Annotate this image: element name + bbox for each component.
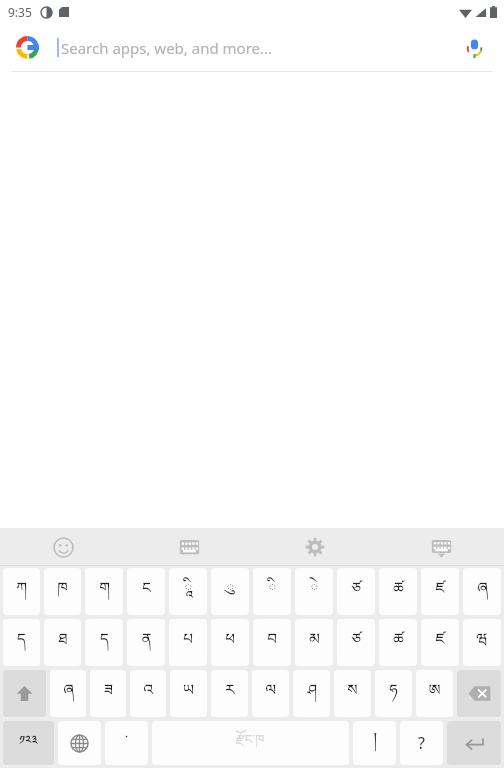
button[interactable]: བ [253, 619, 291, 666]
staticText: ཝ [476, 622, 488, 664]
staticText: ུ [226, 571, 235, 613]
button[interactable]: ཝ [463, 619, 501, 666]
button[interactable]: ཕ [211, 619, 249, 666]
button[interactable]: མ [295, 619, 333, 666]
button[interactable]: ་ [105, 721, 148, 765]
staticText: ཙ [351, 571, 361, 613]
button[interactable]: ང [127, 568, 165, 615]
staticText: ད [17, 622, 26, 664]
button[interactable]: ཧ [375, 670, 412, 717]
staticText: ཛ [435, 622, 445, 664]
staticText: ཞ [477, 571, 488, 613]
button[interactable]: ཱི [169, 568, 207, 615]
button[interactable]: ི [253, 568, 291, 615]
button[interactable]: Search apps, web, and more... [0, 24, 504, 71]
staticText: ཙ [351, 622, 361, 664]
button[interactable]: Backspace [457, 670, 501, 717]
staticText: ཚ [393, 571, 404, 613]
button[interactable]: ཁ [44, 568, 81, 615]
button[interactable]: Emoji [0, 528, 126, 566]
staticText: ཱི [184, 571, 193, 613]
button[interactable]: ཨ [416, 670, 453, 717]
staticText: ེ [310, 571, 319, 613]
button[interactable]: ། [353, 721, 396, 765]
staticText: ཐ [58, 622, 68, 664]
staticText: བ [267, 622, 277, 664]
staticText: ང [142, 571, 151, 613]
button[interactable]: པ [169, 619, 207, 666]
button[interactable]: Keyboard layout [126, 528, 252, 566]
staticText: ལ [265, 673, 276, 715]
staticText: ཁ [57, 571, 68, 613]
button[interactable]: ག [85, 568, 123, 615]
staticText: ། [373, 721, 377, 765]
button[interactable]: ཛ [421, 568, 459, 615]
staticText: ཀ [16, 571, 27, 613]
staticText: ཚ [393, 622, 404, 664]
button[interactable]: ད [85, 619, 123, 666]
button[interactable]: ཤ [293, 670, 330, 717]
button[interactable]: ཚ [379, 619, 417, 666]
staticText: ཕ [225, 622, 235, 664]
staticText: ན [141, 622, 152, 664]
button[interactable]: ད [3, 619, 40, 666]
button[interactable]: ? [400, 721, 443, 765]
staticText: ? [418, 732, 425, 754]
button[interactable]: རྫོང་ཁ [152, 721, 349, 765]
button[interactable]: ེ [295, 568, 333, 615]
staticText: པ [183, 622, 193, 664]
staticText: ག [99, 571, 110, 613]
button[interactable]: ལ [252, 670, 289, 717]
staticText: ༡༢༣ [19, 726, 38, 760]
staticText: ི [268, 571, 277, 613]
button[interactable]: ཙ [337, 568, 375, 615]
staticText: ཨ [428, 673, 441, 715]
button[interactable]: ས [334, 670, 371, 717]
button[interactable]: ཞ [50, 670, 86, 717]
staticText: རྫོང་ཁ [236, 725, 265, 762]
staticText: ད [100, 622, 109, 664]
staticText: 9:35 [8, 4, 32, 20]
staticText: ཟ [104, 673, 113, 715]
button[interactable]: ཡ [170, 670, 207, 717]
staticText: ཤ [307, 673, 317, 715]
button[interactable]: Change language [58, 721, 101, 765]
button[interactable]: Settings [252, 528, 378, 566]
staticText: ་ [125, 726, 128, 760]
button[interactable]: ཞ [463, 568, 501, 615]
button[interactable]: ཙ [337, 619, 375, 666]
button[interactable]: ུ [211, 568, 249, 615]
button[interactable]: ཟ [90, 670, 126, 717]
button[interactable]: Enter [447, 721, 501, 765]
button[interactable]: ན [127, 619, 165, 666]
button[interactable]: ཀ [3, 568, 40, 615]
button[interactable]: ཐ [44, 619, 81, 666]
button[interactable]: ར [211, 670, 248, 717]
button[interactable]: ཛ [421, 619, 459, 666]
staticText: འ [143, 673, 153, 715]
button[interactable]: ༡༢༣ [3, 721, 54, 765]
staticText: ས [347, 673, 358, 715]
staticText: མ [309, 622, 320, 664]
staticText: ཛ [435, 571, 445, 613]
staticText: ཞ [63, 673, 74, 715]
button[interactable]: འ [130, 670, 166, 717]
button[interactable]: Voice search [452, 26, 496, 70]
button[interactable]: ཚ [379, 568, 417, 615]
staticText: Search apps, web, and more... [61, 38, 273, 58]
staticText: ར [225, 673, 235, 715]
staticText: ཡ [183, 673, 194, 715]
staticText: ཧ [389, 673, 398, 715]
button[interactable]: Shift [3, 670, 46, 717]
button[interactable]: Hide keyboard [378, 528, 504, 566]
